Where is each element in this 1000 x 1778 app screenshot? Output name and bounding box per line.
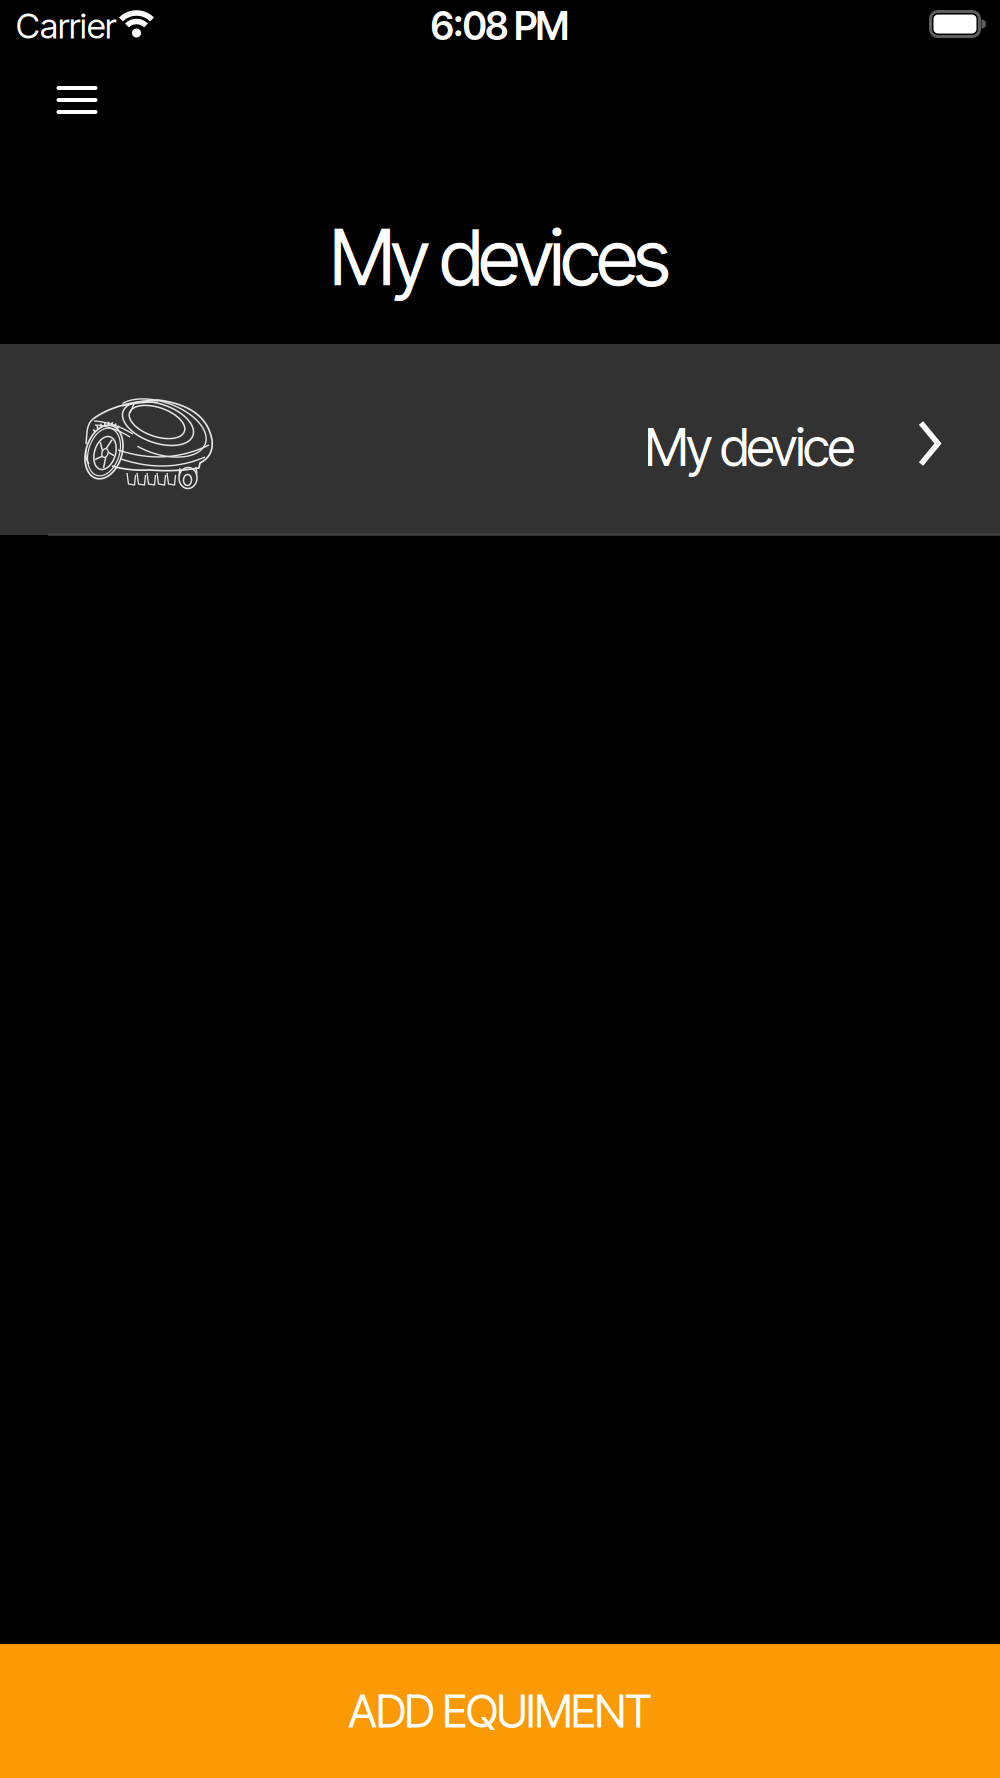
button[interactable]: My device (0, 344, 1000, 535)
button[interactable]: Menu (42, 70, 112, 130)
staticText: Carrier (16, 6, 116, 46)
staticText: My device (644, 416, 855, 478)
staticText: 6:08 PM (430, 3, 569, 49)
button[interactable]: ADD EQUIMENT (0, 1644, 1000, 1778)
staticText: My devices (329, 211, 670, 303)
staticText: ADD EQUIMENT (348, 1684, 652, 1738)
